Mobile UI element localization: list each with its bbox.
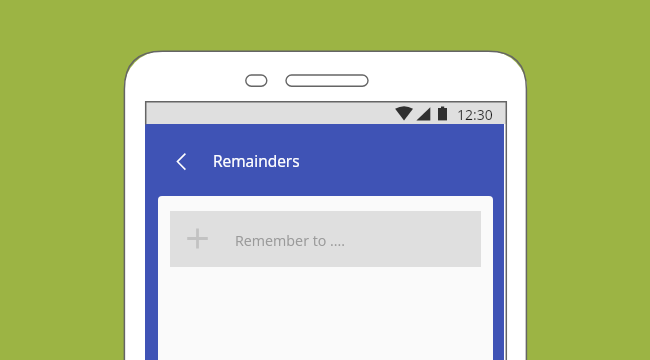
staticText: 12:30 bbox=[457, 105, 493, 124]
staticText: Remainders bbox=[213, 150, 300, 171]
staticText: Remember to .... bbox=[235, 231, 346, 250]
button[interactable]: Remember to .... bbox=[170, 211, 481, 267]
button[interactable]: Back bbox=[159, 137, 205, 183]
